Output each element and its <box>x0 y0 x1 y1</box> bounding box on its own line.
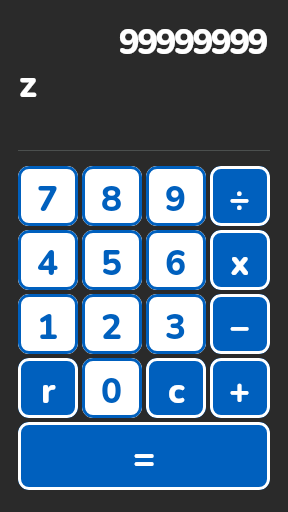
button[interactable]: Zero <box>82 358 142 418</box>
staticText: 0 <box>101 368 123 416</box>
button[interactable]: Divide <box>210 166 270 226</box>
button[interactable]: Three <box>146 294 206 354</box>
staticText: 99999999 <box>14 19 266 67</box>
button[interactable]: Seven <box>18 166 78 226</box>
button[interactable]: One <box>18 294 78 354</box>
staticText: = <box>133 434 156 484</box>
button[interactable]: Nine <box>146 166 206 226</box>
button[interactable]: Backspace <box>18 358 78 418</box>
button[interactable]: Eight <box>82 166 142 226</box>
button[interactable]: Six <box>146 230 206 290</box>
staticText: ÷ <box>229 176 251 224</box>
button[interactable]: Subtract <box>210 294 270 354</box>
staticText: 1 <box>37 304 59 352</box>
staticText: 6 <box>165 240 187 288</box>
staticText: 7 <box>37 176 59 224</box>
button[interactable]: Two <box>82 294 142 354</box>
staticText: + <box>229 368 251 416</box>
staticText: 8 <box>101 176 123 224</box>
staticText: 5 <box>101 240 123 288</box>
staticText: 3 <box>165 304 187 352</box>
staticText: r <box>41 368 56 416</box>
button[interactable]: Multiply <box>210 230 270 290</box>
staticText: 2 <box>101 304 123 352</box>
button[interactable]: Add <box>210 358 270 418</box>
staticText: x <box>230 240 250 288</box>
staticText: − <box>229 304 251 352</box>
staticText: 9 <box>165 176 187 224</box>
button[interactable]: Equals <box>18 422 270 490</box>
staticText: 4 <box>37 240 59 288</box>
button[interactable]: Four <box>18 230 78 290</box>
staticText: c <box>168 368 185 416</box>
button[interactable]: Clear <box>146 358 206 418</box>
button[interactable]: Five <box>82 230 142 290</box>
staticText: z <box>19 60 271 110</box>
